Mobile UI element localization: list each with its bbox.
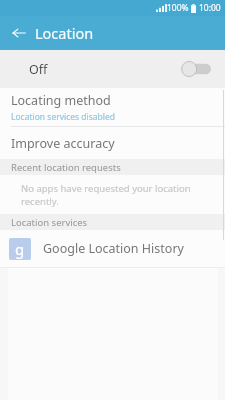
- staticText: Location: [35, 23, 94, 43]
- button[interactable]: g: [0, 230, 225, 267]
- staticText: Location services: [11, 216, 88, 229]
- button[interactable]: Improve accuracy: [0, 127, 225, 159]
- staticText: Google Location History: [43, 240, 184, 257]
- staticText: g: [15, 239, 25, 259]
- staticText: 10:00: [199, 2, 221, 14]
- staticText: Off: [29, 61, 48, 78]
- button[interactable]: Locating method: [0, 88, 225, 126]
- staticText: Improve accuracy: [11, 135, 115, 152]
- button[interactable]: Off: [0, 50, 225, 88]
- staticText: No apps have requested your location rec…: [21, 182, 225, 208]
- staticText: Recent location requests: [11, 161, 121, 174]
- button[interactable]: Back: [6, 20, 32, 46]
- staticText: Locating method: [11, 92, 111, 109]
- staticText: 100%: [167, 2, 189, 14]
- staticText: Location services disabled: [11, 111, 116, 123]
